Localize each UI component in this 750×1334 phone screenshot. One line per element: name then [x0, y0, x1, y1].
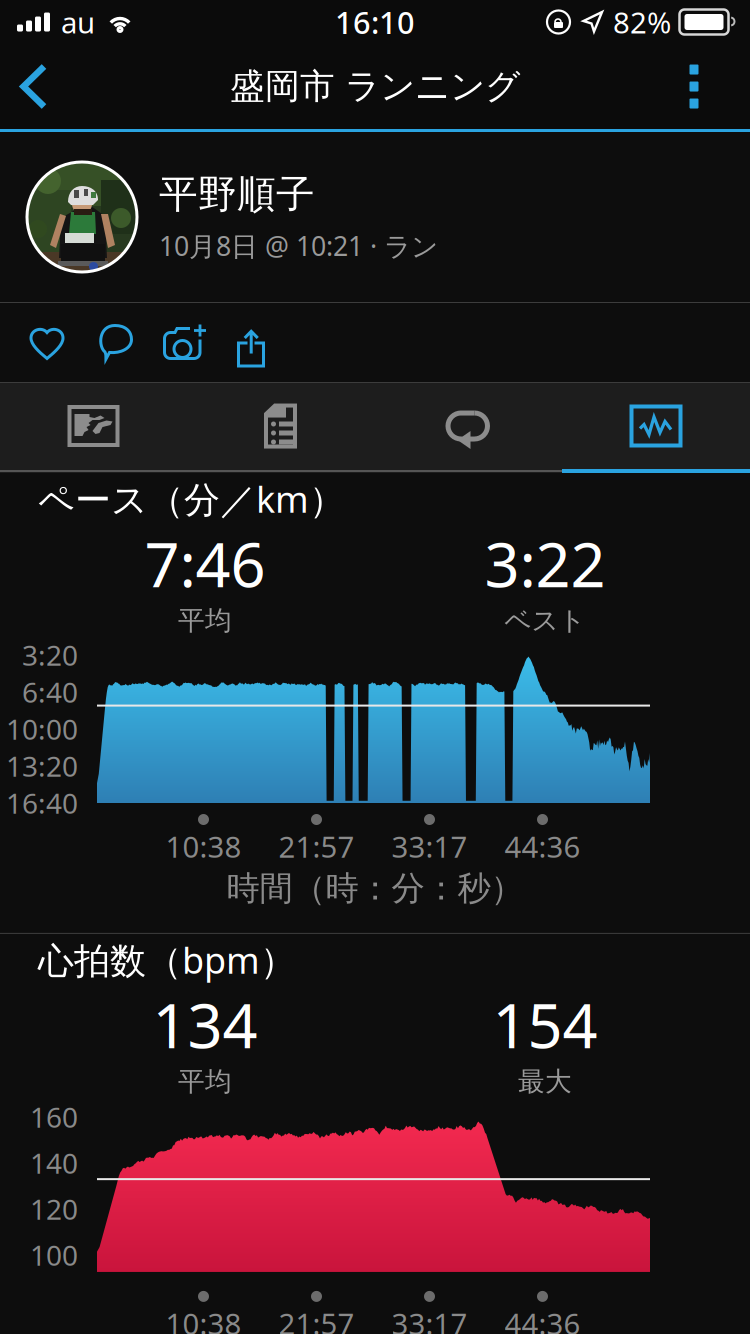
- button[interactable]: Laps: [374, 383, 562, 469]
- staticText: 最大: [518, 1065, 572, 1098]
- staticText: 44:36: [504, 1304, 580, 1334]
- button[interactable]: Like: [13, 303, 81, 382]
- staticText: 21:57: [278, 1304, 354, 1334]
- button[interactable]: Splits: [187, 383, 374, 469]
- staticText: 3:20: [22, 636, 78, 674]
- staticText: 6:40: [22, 673, 78, 711]
- button[interactable]: Share: [217, 303, 285, 382]
- button[interactable]: Analysis: [562, 383, 750, 469]
- staticText: 10:38: [165, 1304, 241, 1334]
- staticText: 平野順子: [159, 170, 315, 218]
- button[interactable]: More options: [656, 44, 732, 129]
- staticText: 時間（時：分：秒）: [226, 868, 523, 909]
- staticText: 10:38: [165, 827, 241, 866]
- button[interactable]: Add photo: [149, 303, 217, 382]
- staticText: 3:22: [484, 523, 605, 604]
- staticText: 7:46: [144, 523, 265, 604]
- staticText: 盛岡市 ランニング: [230, 65, 520, 108]
- staticText: 心拍数（bpm）: [38, 936, 296, 984]
- button[interactable]: Map: [0, 383, 187, 469]
- staticText: 10:00: [6, 710, 78, 748]
- staticText: ベスト: [504, 604, 585, 637]
- button[interactable]: Back: [4, 44, 64, 129]
- staticText: 33:17: [391, 1304, 467, 1334]
- staticText: 82%: [613, 2, 671, 41]
- staticText: 160: [30, 1098, 78, 1135]
- staticText: 10月8日 @ 10:21 · ラン: [159, 228, 438, 263]
- staticText: 16:40: [6, 784, 78, 822]
- staticText: 33:17: [391, 827, 467, 866]
- staticText: au: [61, 2, 95, 41]
- staticText: 16:10: [335, 2, 415, 42]
- staticText: 平均: [178, 1065, 232, 1098]
- staticText: 140: [30, 1144, 78, 1181]
- staticText: 154: [492, 984, 597, 1065]
- staticText: 134: [152, 984, 257, 1065]
- staticText: 13:20: [6, 747, 78, 785]
- staticText: 120: [30, 1190, 78, 1227]
- staticText: 平均: [178, 604, 232, 637]
- button[interactable]: Comment: [81, 303, 149, 382]
- staticText: ペース（分／km）: [38, 475, 345, 523]
- staticText: 21:57: [278, 827, 354, 866]
- staticText: 44:36: [504, 827, 580, 866]
- staticText: 100: [30, 1236, 78, 1273]
